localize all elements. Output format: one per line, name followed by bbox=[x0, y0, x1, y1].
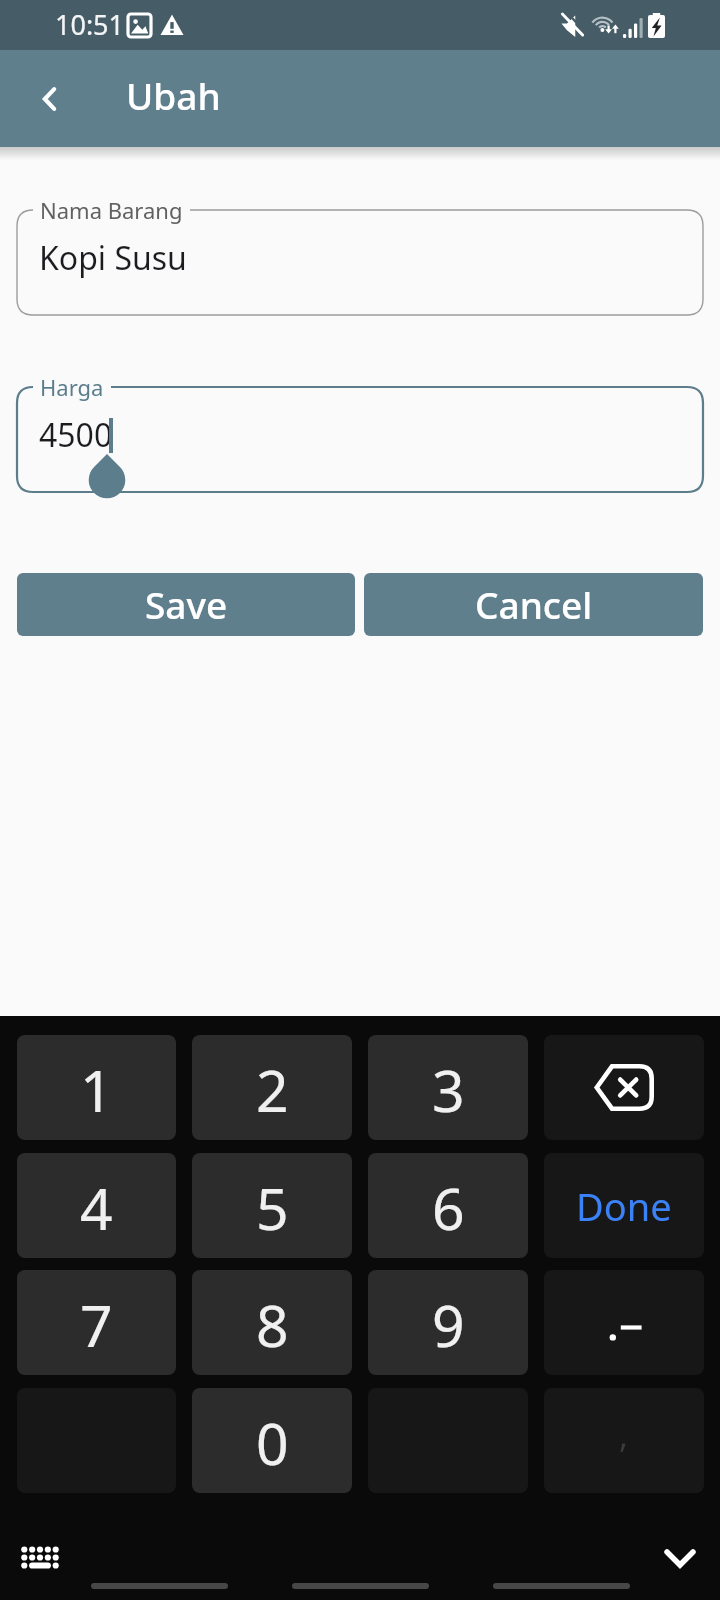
staticText: Cancel bbox=[475, 579, 593, 629]
staticText: Save bbox=[145, 579, 228, 629]
button[interactable]: 9 bbox=[368, 1270, 528, 1375]
button[interactable]: 4 bbox=[17, 1153, 176, 1258]
staticText: 3 bbox=[432, 1051, 465, 1129]
staticText: 7 bbox=[80, 1286, 113, 1364]
button[interactable]: Cancel bbox=[364, 573, 703, 636]
staticText: 1 bbox=[80, 1051, 113, 1129]
staticText: 5 bbox=[256, 1169, 289, 1247]
button[interactable]: 2 bbox=[192, 1035, 352, 1140]
staticText: Ubah bbox=[126, 70, 221, 120]
button[interactable] bbox=[544, 1270, 704, 1375]
button[interactable]: 5 bbox=[192, 1153, 352, 1258]
button[interactable]: Switch keyboard bbox=[0, 1536, 80, 1578]
button[interactable]: 1 bbox=[17, 1035, 176, 1140]
staticText: 2 bbox=[256, 1051, 289, 1129]
staticText: 4 bbox=[80, 1169, 113, 1247]
button[interactable]: 3 bbox=[368, 1035, 528, 1140]
button[interactable]: 0 bbox=[192, 1388, 352, 1493]
button[interactable]: 7 bbox=[17, 1270, 176, 1375]
staticText: 4500 bbox=[39, 413, 113, 457]
button[interactable]: Hide keyboard bbox=[645, 1537, 715, 1579]
staticText: , bbox=[619, 1412, 629, 1458]
button[interactable]: Back bbox=[28, 77, 72, 121]
button[interactable]: 6 bbox=[368, 1153, 528, 1258]
staticText: Nama Barang bbox=[40, 195, 183, 225]
button[interactable]: Save bbox=[17, 573, 355, 636]
button[interactable]: 8 bbox=[192, 1270, 352, 1375]
button[interactable] bbox=[544, 1035, 704, 1140]
staticText: 10:51 bbox=[55, 6, 125, 43]
staticText: Harga bbox=[40, 372, 104, 402]
staticText: 6 bbox=[432, 1169, 465, 1247]
staticText: Done bbox=[576, 1180, 672, 1232]
button[interactable]: 4500 bbox=[17, 387, 703, 492]
staticText: 8 bbox=[256, 1286, 289, 1364]
staticText: 9 bbox=[432, 1286, 465, 1364]
button[interactable]: Kopi Susu bbox=[17, 210, 703, 315]
staticText: 0 bbox=[256, 1404, 289, 1482]
staticText: Kopi Susu bbox=[39, 236, 187, 280]
button[interactable]: Done bbox=[544, 1153, 704, 1258]
